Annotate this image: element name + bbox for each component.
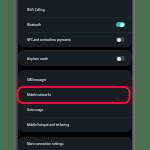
button[interactable]: Switch off <box>116 56 125 61</box>
button[interactable]: Mobile networks <box>18 87 132 102</box>
staticText: Wi-Fi Calling <box>27 8 132 12</box>
staticText: Bluetooth <box>27 23 116 27</box>
staticText: Airplane mode <box>27 57 116 61</box>
button[interactable]: Wi-Fi Calling <box>18 2 132 17</box>
button[interactable]: Mobile hotspot and tethering <box>18 117 132 132</box>
staticText: NFC and contactless payments <box>27 38 116 42</box>
button[interactable]: Bluetooth <box>18 17 132 32</box>
staticText: More connection settings <box>27 142 132 146</box>
button[interactable]: More connection settings <box>18 137 132 150</box>
button[interactable]: NFC and contactless payments <box>18 32 132 47</box>
button[interactable]: Data usage <box>18 102 132 117</box>
staticText: Mobile networks <box>27 93 132 97</box>
staticText: Data usage <box>27 108 132 112</box>
button[interactable]: Switch off <box>116 37 125 42</box>
staticText: Mobile hotspot and tethering <box>27 123 132 127</box>
button[interactable]: SIM manager <box>18 72 132 87</box>
staticText: SIM manager <box>27 78 132 82</box>
button[interactable]: Airplane mode <box>18 51 132 66</box>
button[interactable]: Switch on <box>116 22 125 27</box>
